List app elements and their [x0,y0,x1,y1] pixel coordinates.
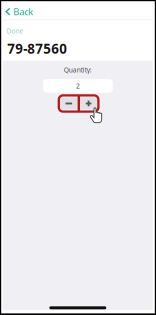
staticText: Quantity: [64,65,92,74]
staticText: Done [6,27,23,35]
button[interactable]: Back [3,3,49,20]
staticText: 2 [76,81,80,90]
staticText: 79-87560 [7,40,67,57]
button[interactable]: Increase quantity [80,98,97,109]
button[interactable]: Decrease quantity [60,98,77,109]
button[interactable]: Done [3,26,43,36]
staticText: Back [13,5,33,18]
